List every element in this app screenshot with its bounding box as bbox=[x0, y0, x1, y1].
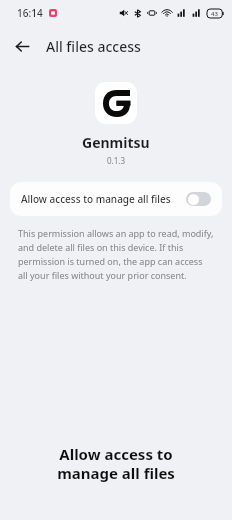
staticText: This permission allows an app to read, m… bbox=[18, 227, 214, 282]
staticText: 0.1.3 bbox=[107, 155, 126, 166]
button[interactable]: Allow access to manage all files toggle bbox=[186, 192, 211, 206]
staticText: Genmitsu bbox=[82, 133, 150, 152]
staticText: 16:14 bbox=[17, 6, 43, 20]
staticText: All files access bbox=[46, 37, 141, 56]
staticText: 43 bbox=[211, 10, 218, 18]
button[interactable]: Allow access to manage all files bbox=[10, 182, 222, 216]
button[interactable]: Back bbox=[8, 32, 36, 60]
staticText: Allow access to manage all files bbox=[57, 444, 175, 483]
staticText: Allow access to manage all files bbox=[21, 192, 180, 206]
